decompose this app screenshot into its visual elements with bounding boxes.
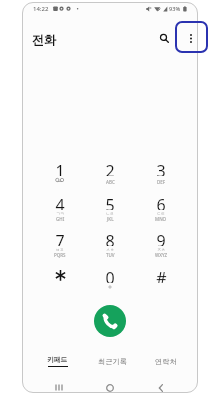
- button[interactable]: Home: [84, 382, 135, 393]
- button[interactable]: 키패드: [30, 351, 85, 371]
- button[interactable]: 최근기록: [85, 351, 139, 371]
- button[interactable]: 4: [36, 192, 84, 225]
- staticText: 0: [105, 267, 115, 283]
- staticText: DEF: [157, 179, 166, 185]
- staticText: 3: [156, 160, 166, 176]
- staticText: MNO: [155, 216, 167, 222]
- staticText: ㅂㅍ: [56, 247, 64, 252]
- button[interactable]: Back: [135, 382, 186, 393]
- staticText: 최근기록: [98, 357, 127, 366]
- button[interactable]: 2: [86, 158, 134, 191]
- staticText: JKL: [107, 216, 114, 222]
- staticText: 4: [55, 194, 65, 210]
- staticText: TUV: [106, 252, 115, 258]
- button[interactable]: More options: [177, 24, 198, 52]
- staticText: ㅅㅎ: [106, 247, 114, 252]
- button[interactable]: Search: [150, 24, 178, 52]
- button[interactable]: 연락처: [139, 351, 193, 371]
- button[interactable]: Recent apps: [33, 382, 84, 393]
- staticText: ㄷㅌ: [157, 211, 165, 216]
- staticText: PQRS: [54, 252, 66, 258]
- button[interactable]: #: [137, 265, 185, 298]
- staticText: 전화: [32, 32, 56, 47]
- staticText: ㅈㅊ: [157, 247, 165, 252]
- staticText: 키패드: [47, 355, 68, 364]
- staticText: 5: [105, 194, 115, 210]
- button[interactable]: 8: [86, 228, 134, 261]
- button[interactable]: 9: [137, 228, 185, 261]
- staticText: WXYZ: [155, 252, 168, 258]
- staticText: ㄱㅋ: [56, 211, 64, 216]
- staticText: 14:22: [33, 5, 49, 13]
- button[interactable]: 3: [137, 158, 185, 191]
- staticText: GHI: [56, 216, 65, 222]
- button[interactable]: 0: [86, 265, 134, 298]
- button[interactable]: 6: [137, 192, 185, 225]
- button[interactable]: [36, 265, 84, 298]
- staticText: #: [156, 267, 167, 283]
- staticText: 6: [156, 194, 166, 210]
- staticText: 9: [156, 230, 166, 246]
- button[interactable]: 1: [36, 158, 84, 191]
- staticText: 7: [55, 230, 65, 246]
- staticText: 1: [55, 160, 65, 176]
- button[interactable]: 5: [86, 192, 134, 225]
- button[interactable]: Call: [94, 305, 126, 337]
- staticText: 2: [105, 160, 115, 176]
- staticText: 93%: [169, 5, 181, 13]
- button[interactable]: 7: [36, 228, 84, 261]
- staticText: ㄴㄹ: [106, 211, 114, 216]
- staticText: ABC: [106, 179, 115, 185]
- staticText: 연락처: [155, 357, 177, 366]
- staticText: 8: [105, 230, 115, 246]
